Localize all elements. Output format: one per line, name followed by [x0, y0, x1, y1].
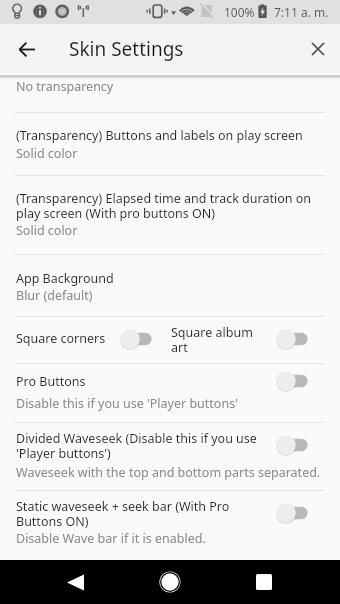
button[interactable] [0, 75, 340, 112]
button[interactable]: Navigate up [10, 32, 44, 66]
staticText: Solid color [16, 222, 78, 239]
button[interactable]: Toggle [272, 432, 312, 458]
button[interactable] [0, 491, 340, 559]
staticText: Skin Settings [69, 36, 184, 62]
staticText: (Transparency) Elapsed time and track du… [16, 190, 311, 207]
staticText: Pro Buttons [16, 373, 86, 390]
staticText: Buttons ON) [16, 513, 89, 530]
button[interactable]: Toggle [272, 368, 312, 394]
button[interactable]: Close [302, 33, 334, 65]
staticText: 7:11 a. m. [274, 4, 329, 20]
button[interactable]: Toggle [272, 326, 312, 352]
staticText: Solid color [16, 145, 78, 162]
button[interactable] [0, 423, 340, 490]
staticText: Divided Waveseek (Disable this if you us… [16, 430, 257, 447]
button[interactable] [0, 255, 340, 316]
staticText: App Background [16, 270, 114, 287]
staticText: Waveseek with the top and bottom parts s… [16, 464, 321, 481]
button[interactable]: Home [153, 565, 187, 599]
button[interactable]: Back [58, 565, 92, 599]
staticText: Disable Wave bar if it is enabled. [16, 530, 206, 547]
button[interactable] [160, 317, 340, 363]
button[interactable]: Toggle [272, 500, 312, 526]
button[interactable]: Toggle [116, 326, 156, 352]
staticText: 'Player buttons') [16, 445, 111, 462]
button[interactable] [0, 113, 340, 175]
button[interactable] [0, 364, 340, 422]
staticText: Disable this if you use 'Player buttons' [16, 395, 238, 412]
staticText: No transparency [16, 78, 114, 95]
staticText: Navbars [16, 64, 65, 81]
staticText: Static waveseek + seek bar (With Pro [16, 498, 230, 515]
staticText: (Transparency) Buttons and labels on pla… [16, 127, 303, 144]
button[interactable] [0, 176, 340, 254]
staticText: Blur (default) [16, 287, 93, 304]
button[interactable]: Recent apps [247, 565, 281, 599]
button[interactable] [0, 317, 160, 363]
staticText: Square corners [16, 330, 106, 347]
staticText: art [171, 339, 188, 356]
staticText: Square album [171, 324, 253, 341]
staticText: play screen (With pro buttons ON) [16, 205, 216, 222]
staticText: 100% [224, 4, 255, 20]
